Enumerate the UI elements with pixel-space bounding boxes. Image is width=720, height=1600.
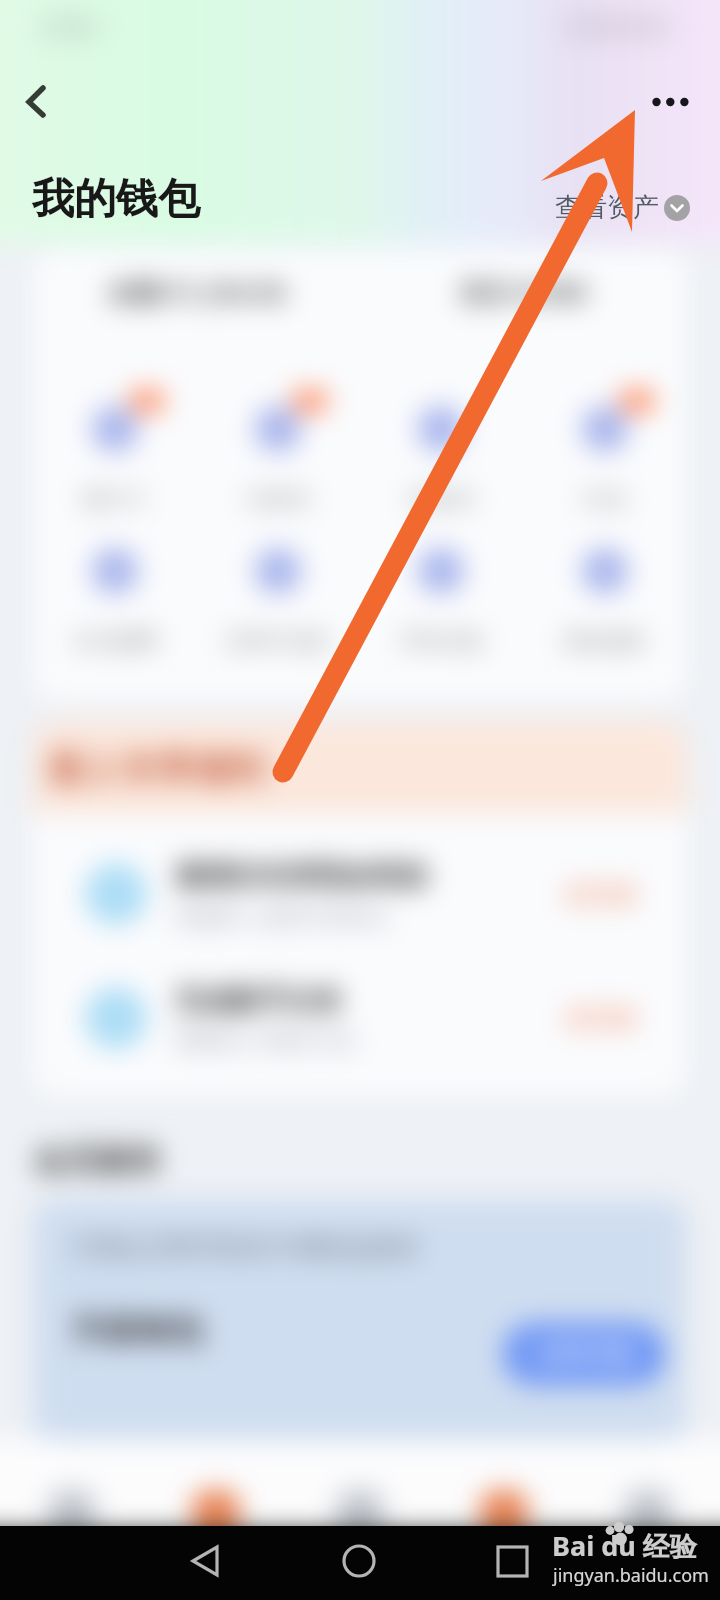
button[interactable]: 信用 (432, 1440, 576, 1532)
staticText: 付款码 (246, 486, 309, 512)
button[interactable]: 信用卡还款 (196, 548, 359, 654)
button[interactable]: 首页 (0, 1440, 144, 1532)
staticText: 领取新人专属大礼包 (175, 1028, 355, 1053)
staticText: 开通会员尊享更多专属权益服务 (71, 1232, 421, 1263)
button[interactable]: 付款码 (196, 406, 359, 512)
staticText: jingyan.baidu.com (553, 1563, 709, 1588)
button[interactable]: More options (634, 80, 700, 124)
staticText: 积分 8,900 (461, 274, 587, 310)
staticText: Bai du 经验 (552, 1527, 697, 1564)
staticText: 每邀请1人最高可得88元 (175, 903, 390, 930)
button[interactable]: 银行卡 (33, 406, 196, 512)
button[interactable]: Back (4, 72, 64, 132)
staticText: 收款码 (410, 486, 473, 512)
button[interactable]: 完成新手任务 (33, 956, 687, 1080)
staticText: 新人专享福利 (49, 746, 265, 791)
button[interactable]: 生活缴费 (33, 548, 196, 654)
button[interactable]: 去完成 (553, 996, 645, 1040)
button[interactable]: 更多服务 (523, 548, 687, 654)
button[interactable]: 理财 (144, 1440, 288, 1532)
staticText: 去完成 (563, 879, 635, 909)
staticText: 查看资产 (555, 191, 659, 224)
staticText: 生活缴费 (73, 628, 157, 654)
button[interactable]: 生活 (288, 1440, 432, 1532)
button[interactable]: 收款码 (359, 406, 523, 512)
button[interactable]: 红包 (523, 406, 687, 512)
staticText: 更多服务 (563, 628, 647, 654)
staticText: 立即开通 (536, 1339, 632, 1369)
staticText: 去完成 (563, 1003, 635, 1033)
staticText: 我的钱包 (32, 173, 200, 226)
button[interactable]: 查看资产 (555, 191, 690, 224)
staticText: 余额 ¥1,234.56 (108, 274, 286, 310)
button[interactable]: 立即开通 (503, 1323, 665, 1385)
button[interactable]: 去完成 (553, 872, 645, 916)
staticText: 邀请好友得现金奖励 (175, 858, 427, 893)
button[interactable]: 手机充值 (359, 548, 523, 654)
button[interactable]: 我的 (576, 1440, 720, 1532)
staticText: 升级钱包 (71, 1309, 203, 1351)
staticText: 完成新手任务 (175, 983, 343, 1018)
staticText: 会员服务 (34, 1140, 162, 1180)
button[interactable]: 邀请好友得现金奖励 (33, 832, 687, 956)
